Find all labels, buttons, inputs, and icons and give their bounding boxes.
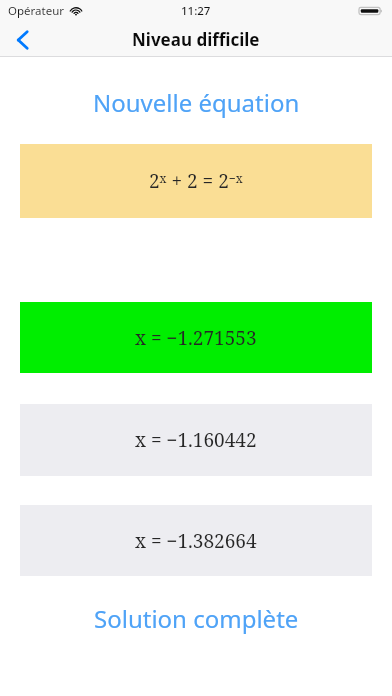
button[interactable]: Back: [0, 22, 46, 57]
staticText: x = −1.160442: [135, 427, 257, 453]
button[interactable]: x = −1.271553: [20, 302, 372, 373]
staticText: 2x + 2 = 2−x: [149, 168, 243, 194]
staticText: Solution complète: [94, 602, 299, 634]
staticText: Nouvelle équation: [93, 86, 300, 118]
button[interactable]: Solution complète: [0, 602, 392, 634]
button[interactable]: Nouvelle équation: [0, 86, 392, 118]
staticText: x = −1.271553: [135, 325, 257, 351]
button[interactable]: x = −1.160442: [20, 404, 372, 476]
staticText: x = −1.382664: [135, 528, 257, 554]
staticText: Niveau difficile: [132, 28, 260, 51]
staticText: 11:27: [181, 3, 211, 19]
staticText: Opérateur: [8, 3, 65, 19]
button[interactable]: x = −1.382664: [20, 505, 372, 576]
button[interactable]: 2x + 2 = 2−x: [20, 144, 372, 218]
